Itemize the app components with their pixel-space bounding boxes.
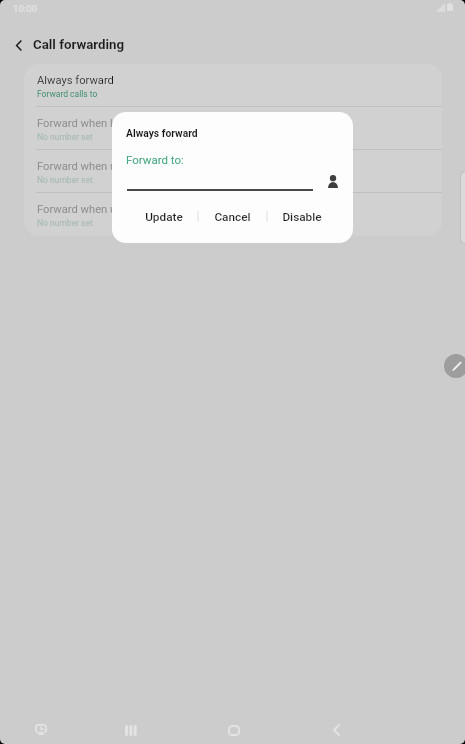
button[interactable]: Home	[214, 712, 254, 744]
button[interactable]: Disable	[268, 200, 335, 233]
staticText: Disable	[282, 210, 322, 224]
button[interactable]: Forward when unreachable	[24, 193, 442, 235]
staticText: Forward when unanswered	[37, 160, 171, 173]
staticText: Forward when busy	[37, 117, 134, 130]
staticText: No number set	[37, 218, 93, 228]
button[interactable]: Forward when unanswered	[24, 150, 442, 192]
staticText: Forward calls to	[37, 89, 98, 99]
staticText: Forward when unreachable	[37, 203, 172, 216]
staticText: No number set	[37, 175, 93, 185]
button[interactable]: Always forward	[24, 64, 442, 106]
button[interactable]: Navigate up	[0, 28, 33, 62]
staticText: Update	[145, 210, 183, 224]
staticText: Always forward	[126, 127, 198, 139]
button[interactable]: Back	[316, 712, 356, 744]
button[interactable]: Cancel	[199, 200, 266, 233]
button[interactable]: Update	[130, 200, 197, 233]
staticText: 10:00	[13, 3, 38, 14]
button[interactable]: Edit	[444, 354, 465, 378]
button[interactable]: Choose contact	[320, 168, 346, 194]
staticText: Cancel	[214, 210, 251, 224]
staticText: Always forward	[37, 74, 114, 87]
button[interactable]: Forward when busy	[24, 107, 442, 149]
staticText: Forward to:	[126, 153, 184, 166]
button[interactable]: Show keyboard	[21, 711, 61, 744]
staticText: No number set	[37, 132, 93, 142]
button[interactable]: Recent apps	[111, 712, 151, 744]
staticText: Call forwarding	[33, 37, 125, 53]
